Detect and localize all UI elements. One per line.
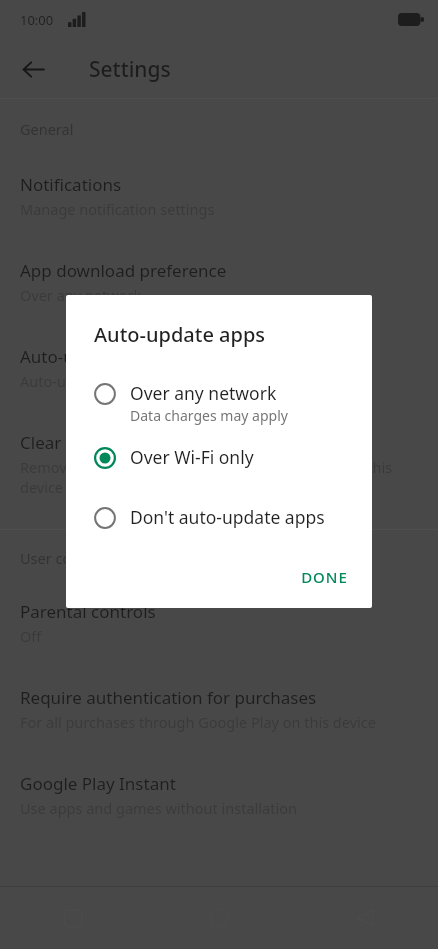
button[interactable]: Notifications <box>0 159 438 233</box>
staticText: Use apps and games without installation <box>20 798 297 818</box>
staticText: Manage notification settings <box>20 199 215 219</box>
staticText: Over Wi-Fi only <box>130 445 254 469</box>
staticText: Over any network <box>130 381 277 405</box>
staticText: Auto-update apps <box>94 321 266 348</box>
button[interactable]: Over Wi-Fi only <box>66 438 372 476</box>
staticText: User controls <box>20 548 111 568</box>
button[interactable]: Over any network <box>66 374 372 432</box>
button[interactable]: Auto-update apps <box>0 331 438 405</box>
staticText: Require authentication for purchases <box>20 686 317 709</box>
staticText: Auto-update apps over Wi-Fi only <box>20 371 246 391</box>
staticText: Google Play Instant <box>20 772 176 795</box>
staticText: Over any network <box>20 285 142 305</box>
button[interactable]: DONE <box>287 558 362 596</box>
staticText: Auto-update apps <box>20 345 163 368</box>
button[interactable]: Parental controls <box>0 586 438 660</box>
staticText: General <box>20 119 74 139</box>
button[interactable]: App download preference <box>0 245 438 319</box>
staticText: Don't auto-update apps <box>130 505 325 529</box>
staticText: 10:00 <box>20 11 54 29</box>
button[interactable]: Clear local search history <box>0 417 438 511</box>
staticText: Remove all the searches you have perform… <box>20 457 393 497</box>
button[interactable]: Back <box>10 46 56 92</box>
staticText: Clear local search history <box>20 431 220 454</box>
button[interactable]: Don't auto-update apps <box>66 498 372 536</box>
staticText: For all purchases through Google Play on… <box>20 712 376 732</box>
staticText: App download preference <box>20 259 227 282</box>
button[interactable]: Google Play Instant <box>0 758 438 832</box>
staticText: Off <box>20 626 42 646</box>
staticText: DONE <box>301 567 348 587</box>
button[interactable]: Require authentication for purchases <box>0 672 438 746</box>
staticText: Parental controls <box>20 600 156 623</box>
staticText: Settings <box>89 55 171 84</box>
staticText: Notifications <box>20 173 122 196</box>
staticText: Data charges may apply <box>130 406 288 425</box>
